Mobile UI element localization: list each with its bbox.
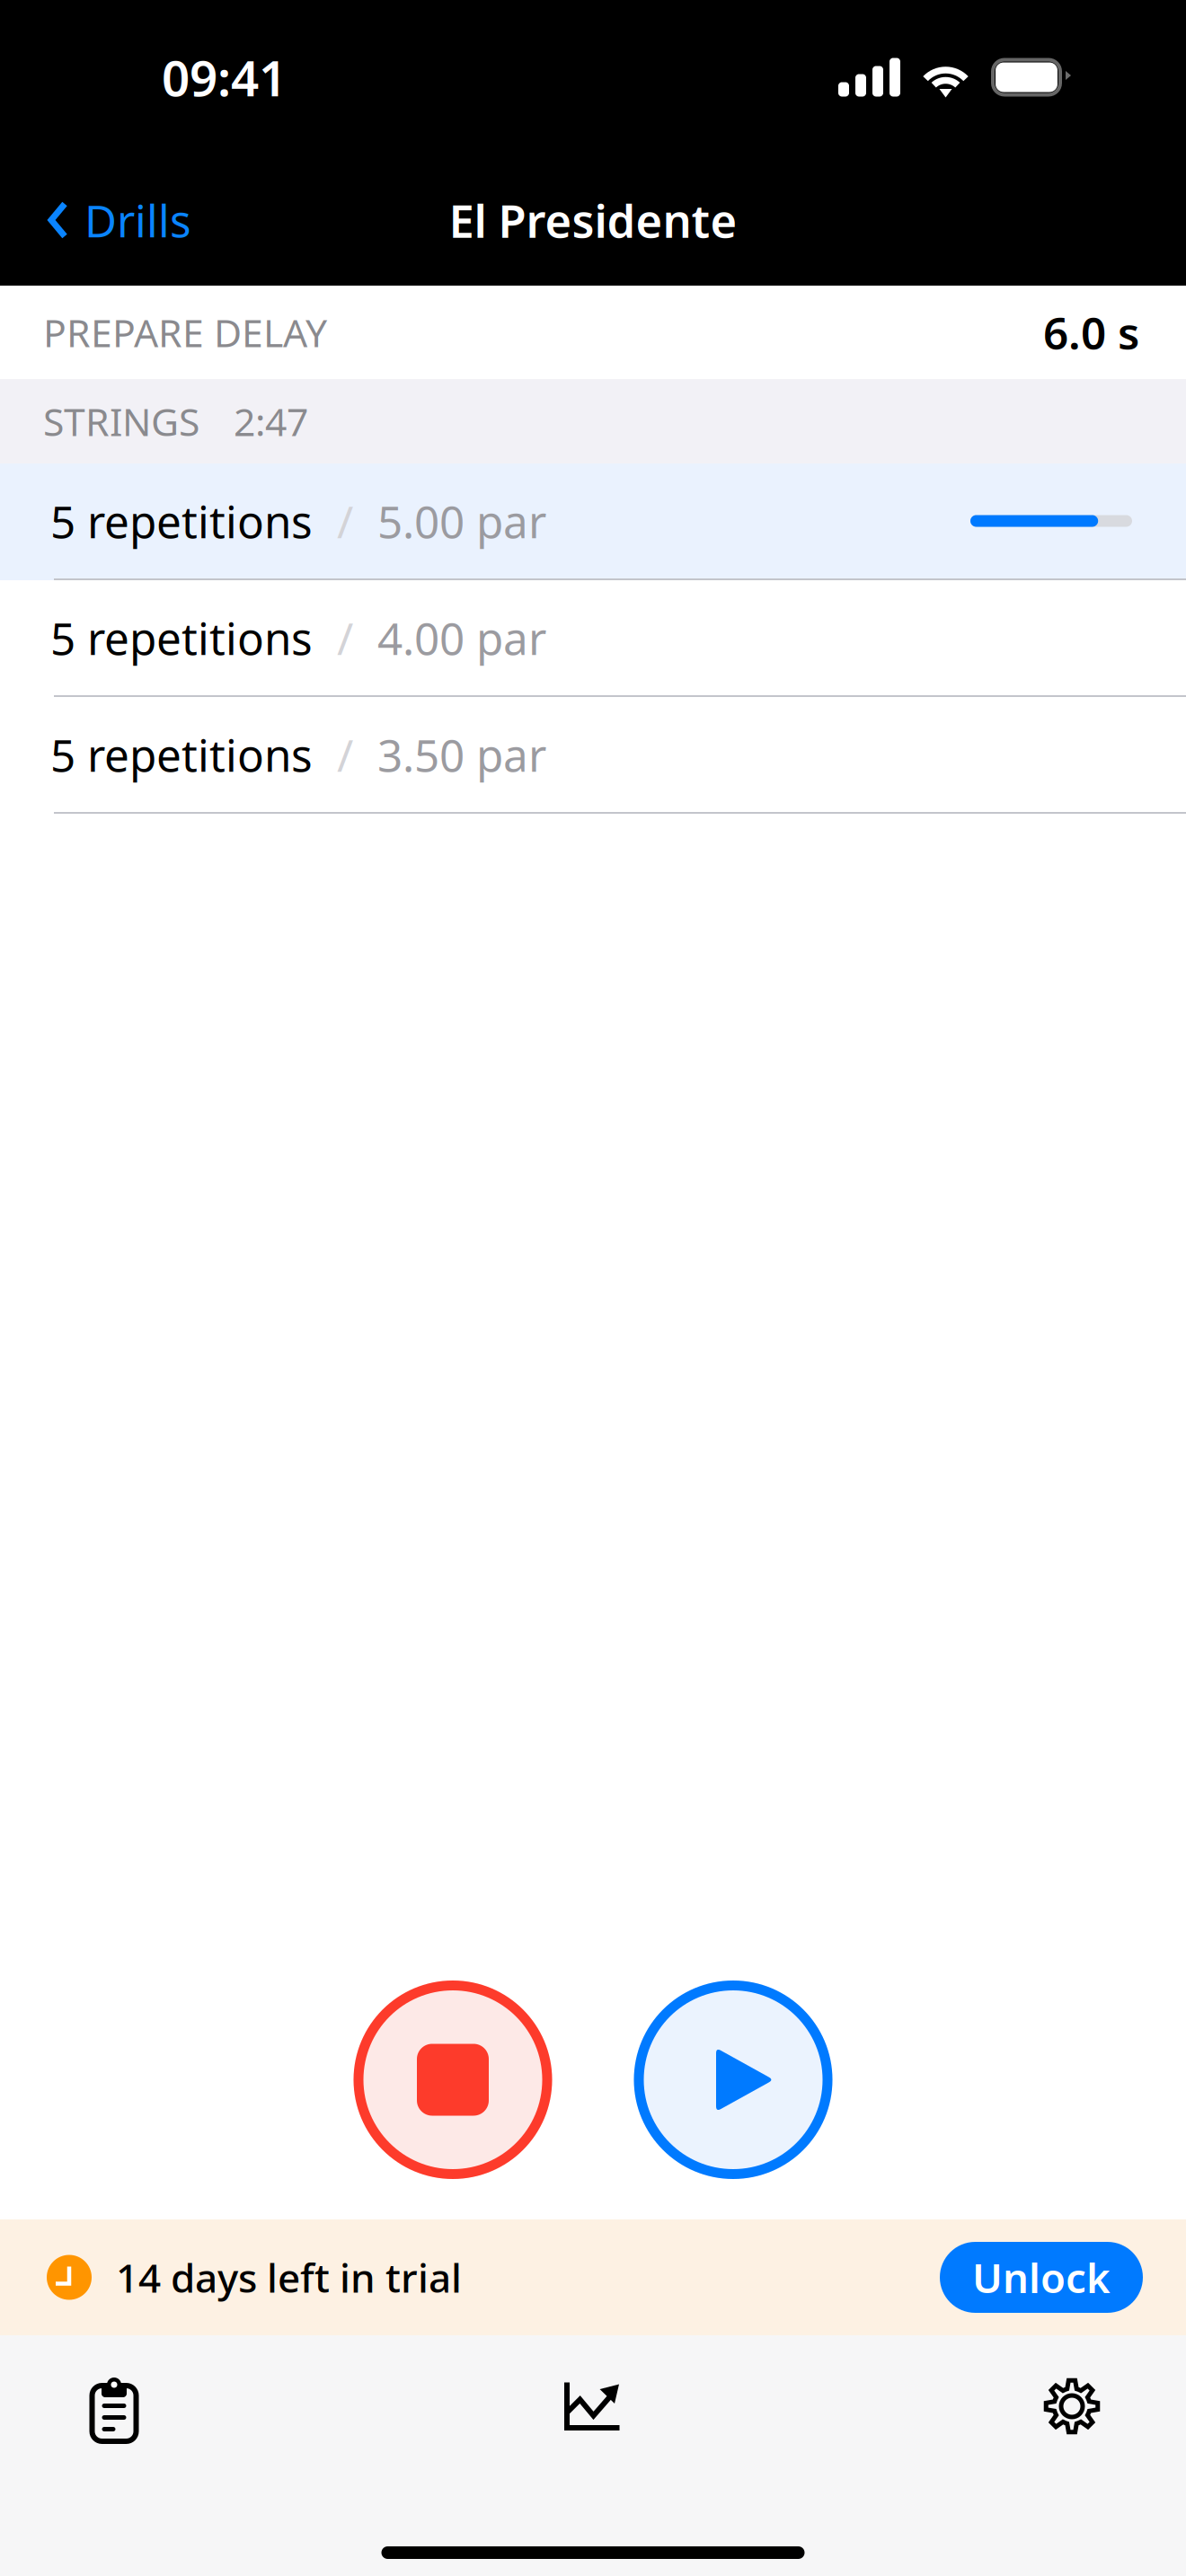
staticText: Unlock: [972, 2250, 1111, 2304]
button[interactable]: PREPARE DELAY: [0, 286, 1186, 379]
button[interactable]: 5 repetitions: [0, 580, 1186, 697]
button[interactable]: 5 repetitions: [0, 697, 1186, 814]
staticText: 5.00 par: [377, 491, 546, 550]
staticText: 3.50 par: [377, 725, 546, 784]
staticText: 14 days left in trial: [116, 2251, 462, 2304]
button[interactable]: Settings: [1005, 2357, 1139, 2456]
staticText: /: [337, 491, 353, 550]
button[interactable]: Stop: [354, 1981, 552, 2179]
staticText: 5 repetitions: [50, 491, 313, 550]
staticText: PREPARE DELAY: [43, 307, 327, 358]
button[interactable]: Drills: [29, 178, 209, 262]
staticText: 2:47: [234, 396, 308, 447]
staticText: 5 repetitions: [50, 608, 313, 667]
staticText: Drills: [84, 191, 191, 249]
staticText: /: [337, 725, 353, 784]
button[interactable]: Play: [634, 1981, 832, 2179]
staticText: El Presidente: [449, 190, 737, 250]
staticText: 4.00 par: [377, 608, 546, 667]
button[interactable]: Stats: [526, 2357, 660, 2456]
staticText: /: [337, 608, 353, 667]
staticText: 09:41: [162, 45, 287, 110]
button[interactable]: Unlock: [940, 2242, 1143, 2313]
staticText: 5 repetitions: [50, 725, 313, 784]
staticText: STRINGS: [43, 396, 199, 447]
staticText: 6.0 s: [1043, 303, 1139, 362]
button[interactable]: 5 repetitions: [0, 463, 1186, 580]
button[interactable]: Drills: [47, 2357, 181, 2456]
